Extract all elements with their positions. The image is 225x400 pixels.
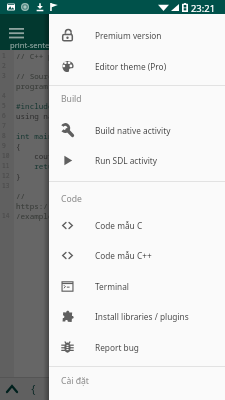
staticText: { xyxy=(16,141,21,151)
staticText: 4 xyxy=(2,91,6,99)
button[interactable]: Report bug xyxy=(49,332,225,363)
staticText: 11 xyxy=(2,161,10,169)
staticText: { xyxy=(30,381,37,396)
staticText: 10 xyxy=(2,151,10,159)
button[interactable]: Code mẫu C++ xyxy=(49,240,225,271)
button[interactable]: } xyxy=(47,380,64,397)
staticText: Install libraries / plugins xyxy=(95,311,189,322)
staticText: 12 xyxy=(2,171,10,179)
staticText: ( xyxy=(74,381,81,396)
staticText: using namespace std; xyxy=(16,111,108,121)
staticText: Premium version xyxy=(95,30,162,41)
staticText: 5 xyxy=(2,101,6,109)
staticText: Cài đặt xyxy=(61,375,89,387)
staticText: print-sentence.cpp xyxy=(10,40,77,50)
staticText: 8 xyxy=(2,131,6,139)
staticText: Terminal xyxy=(95,281,129,292)
staticText: Build native activity xyxy=(95,125,171,136)
staticText: 2 xyxy=(2,61,6,69)
staticText: // xyxy=(16,191,26,201)
staticText: 13 xyxy=(2,181,10,189)
staticText: int main() xyxy=(16,131,62,141)
staticText: // C++ program to display "Hello World" xyxy=(16,51,194,61)
staticText: 1 xyxy=(2,51,6,59)
staticText: Editor theme (Pro) xyxy=(95,61,167,72)
staticText: Report bug xyxy=(95,342,139,353)
staticText: #include <iostream> xyxy=(16,101,103,111)
staticText: 3 xyxy=(2,71,6,79)
staticText: // Source code to display "Hello World" xyxy=(16,71,194,81)
staticText: 6 xyxy=(2,111,6,119)
button[interactable]: Run SDL activity xyxy=(49,145,225,176)
button[interactable]: { xyxy=(25,380,42,397)
staticText: return 0; xyxy=(16,161,76,171)
button[interactable]: ( xyxy=(69,380,86,397)
staticText: 14 xyxy=(2,211,10,219)
button[interactable]: Open navigation drawer xyxy=(7,23,26,42)
staticText: 23:21 xyxy=(191,2,216,15)
button[interactable]: Install libraries / plugins xyxy=(49,301,225,332)
staticText: } xyxy=(16,171,21,181)
staticText: 9 xyxy=(2,141,6,149)
staticText: Code mẫu C xyxy=(95,220,143,231)
staticText: Run SDL activity xyxy=(95,155,158,166)
staticText: cout << "Hello World!"; xyxy=(16,151,140,161)
staticText: program in C++ xyxy=(16,81,80,91)
staticText: Build xyxy=(61,93,82,105)
staticText: /example xyxy=(16,211,53,221)
button[interactable]: Terminal xyxy=(49,271,225,302)
button[interactable]: Collapse toolbar xyxy=(3,380,20,397)
staticText: 7 xyxy=(2,121,6,129)
staticText: https://www.programiz.com xyxy=(16,201,130,211)
staticText: Code xyxy=(61,193,82,205)
button[interactable]: Editor theme (Pro) xyxy=(49,51,225,82)
button[interactable]: Premium version xyxy=(49,20,225,51)
staticText: Code mẫu C++ xyxy=(95,250,152,261)
button[interactable]: Build native activity xyxy=(49,115,225,146)
button[interactable]: Code mẫu C xyxy=(49,210,225,241)
